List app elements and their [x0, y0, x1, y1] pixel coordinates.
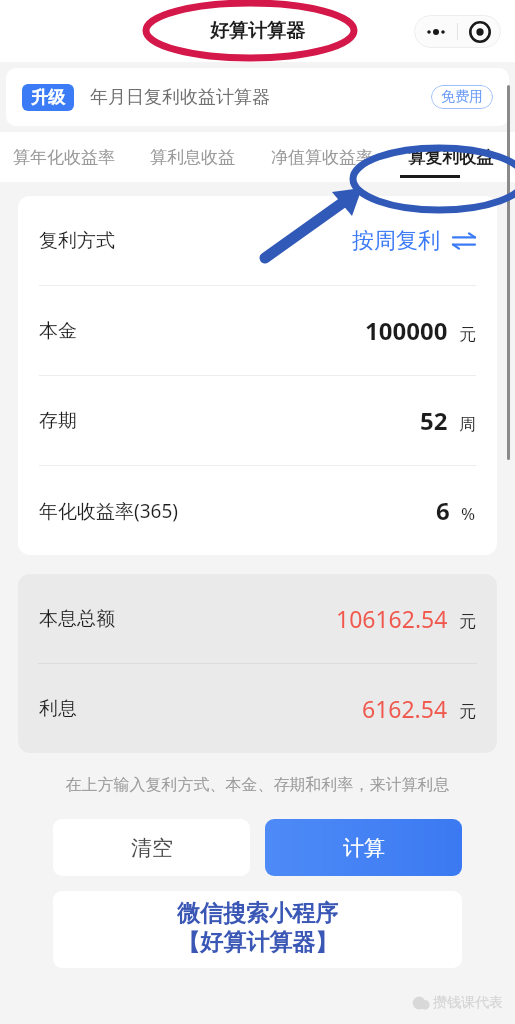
staticText: 本息总额: [39, 607, 115, 631]
button[interactable]: 微信搜索小程序: [53, 891, 462, 968]
staticText: 周: [459, 414, 476, 435]
button[interactable]: Close: [458, 15, 501, 48]
button[interactable]: 本息总额: [18, 574, 497, 663]
button[interactable]: 净值算收益率: [257, 132, 386, 182]
staticText: 利息: [39, 697, 77, 721]
staticText: 复利方式: [39, 229, 115, 253]
staticText: 年月日复利收益计算器: [90, 86, 270, 109]
staticText: 计算: [343, 835, 385, 861]
button[interactable]: 算复利收益: [386, 132, 515, 182]
staticText: 算利息收益: [150, 147, 235, 168]
staticText: 6: [436, 494, 450, 527]
button[interactable]: 算利息收益: [128, 132, 257, 182]
button[interactable]: 计算: [265, 819, 462, 876]
button[interactable]: 升级: [6, 68, 509, 126]
button[interactable]: 年化收益率(365): [18, 466, 497, 555]
staticText: 本金: [39, 319, 77, 343]
button[interactable]: 复利方式: [18, 196, 497, 285]
staticText: 清空: [131, 835, 173, 861]
staticText: 106162.54: [336, 603, 448, 634]
staticText: 【好算计算器】: [177, 928, 338, 957]
button[interactable]: 存期: [18, 376, 497, 465]
staticText: 按周复利: [352, 227, 440, 255]
staticText: 在上方输入复利方式、本金、存期和利率，来计算利息: [12, 775, 503, 795]
staticText: 元: [459, 611, 476, 632]
button[interactable]: 免费用: [431, 85, 493, 109]
button[interactable]: 清空: [53, 819, 250, 876]
staticText: 6162.54: [362, 693, 448, 724]
button[interactable]: 算年化收益率: [0, 132, 128, 182]
staticText: 年化收益率(365): [39, 498, 179, 524]
button[interactable]: More: [414, 15, 457, 48]
staticText: 算年化收益率: [13, 147, 115, 168]
button[interactable]: 利息: [18, 664, 497, 753]
staticText: 净值算收益率: [271, 147, 373, 168]
staticText: 攒钱课代表: [433, 994, 503, 1012]
staticText: %: [461, 502, 476, 525]
staticText: 元: [459, 324, 476, 345]
button[interactable]: 本金: [18, 286, 497, 375]
staticText: 免费用: [441, 88, 483, 106]
staticText: 存期: [39, 409, 77, 433]
staticText: 算复利收益: [408, 147, 493, 168]
staticText: 微信搜索小程序: [177, 899, 338, 928]
staticText: 元: [459, 701, 476, 722]
staticText: 100000: [365, 314, 448, 347]
staticText: 好算计算器: [210, 19, 305, 43]
staticText: 52: [420, 404, 448, 437]
staticText: 升级: [31, 87, 65, 108]
